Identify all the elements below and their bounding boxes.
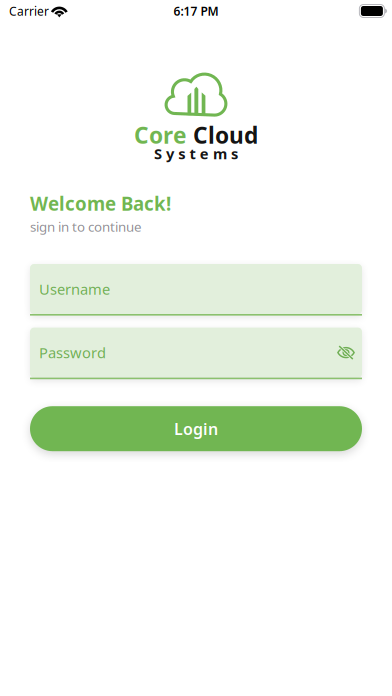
staticText: Core <box>134 120 193 150</box>
staticText: Cloud <box>193 120 258 150</box>
button[interactable]: Login <box>30 406 362 451</box>
staticText: 6:17 PM <box>173 3 218 19</box>
staticText: e <box>200 144 209 163</box>
button[interactable]: Password <box>30 328 362 379</box>
staticText: t <box>189 144 195 163</box>
staticText: y <box>166 144 174 163</box>
staticText: s <box>178 144 185 163</box>
staticText: m <box>213 144 227 163</box>
staticText: Password <box>39 343 106 362</box>
staticText: Username <box>39 279 110 299</box>
staticText: sign in to continue <box>30 218 142 235</box>
staticText: Login <box>174 418 218 439</box>
button[interactable]: Username <box>30 264 362 316</box>
staticText: Carrier <box>9 3 49 19</box>
staticText: Welcome Back! <box>30 191 171 216</box>
staticText: S <box>154 144 162 163</box>
staticText: s <box>231 144 238 163</box>
